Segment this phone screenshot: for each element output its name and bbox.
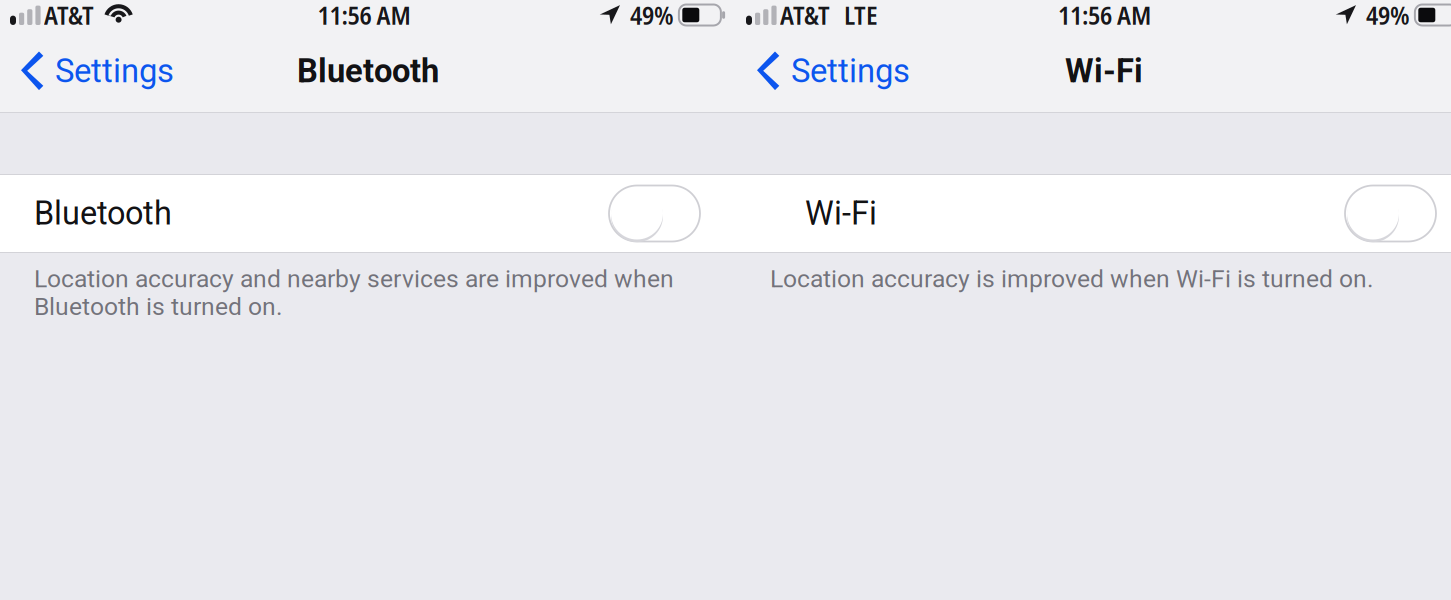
button[interactable]: Back to Settings xyxy=(0,39,190,103)
staticText: Bluetooth xyxy=(297,52,439,90)
button[interactable]: Bluetooth xyxy=(0,175,736,252)
staticText: Location accuracy is improved when Wi-Fi… xyxy=(770,265,1374,293)
staticText: Settings xyxy=(791,52,910,90)
button[interactable]: Back to Settings xyxy=(736,39,926,103)
staticText: 11:56 AM xyxy=(1058,0,1151,32)
staticText: Bluetooth xyxy=(34,194,172,232)
staticText: Wi-Fi xyxy=(805,194,877,232)
button[interactable]: Wi-Fi xyxy=(736,175,1451,252)
staticText: 11:56 AM xyxy=(317,0,410,32)
staticText: LTE xyxy=(844,0,878,32)
staticText: Wi-Fi xyxy=(1065,52,1143,90)
staticText: AT&T xyxy=(780,0,830,32)
staticText: 49% xyxy=(630,0,674,32)
staticText: 49% xyxy=(1366,0,1410,32)
staticText: Settings xyxy=(55,52,174,90)
staticText: AT&T xyxy=(44,0,94,32)
staticText: Location accuracy and nearby services ar… xyxy=(34,265,674,320)
